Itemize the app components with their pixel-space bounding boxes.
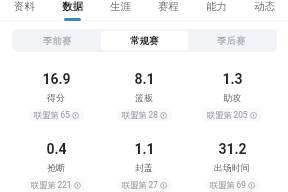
staticText: 出场时间 [214,162,250,173]
staticText: 0.4 [46,141,67,157]
staticText: 能力 [206,0,227,13]
staticText: 资料 [14,0,35,13]
button[interactable]: 季前赛 [14,31,101,50]
staticText: 联盟第 69 [210,180,246,190]
button[interactable]: 0.4 [12,141,100,192]
button[interactable]: 数据 [48,0,96,22]
staticText: 生涯 [110,0,131,13]
staticText: 数据 [62,0,83,13]
button[interactable]: 8.1 [100,71,188,122]
staticText: 联盟第 65 [34,110,70,120]
button[interactable]: 生涯 [96,0,144,22]
button[interactable]: 动态 [240,0,288,22]
button[interactable]: 能力 [192,0,240,22]
staticText: 联盟第 205 [207,110,248,120]
button[interactable]: 赛程 [144,0,192,22]
staticText: 1.1 [134,141,155,157]
other: Info [160,112,167,119]
button[interactable]: 资料 [0,0,48,22]
staticText: 联盟第 221 [31,180,72,190]
staticText: 抢断 [47,162,65,173]
staticText: 31.2 [218,141,247,157]
other: Info [74,182,81,189]
button[interactable]: 常规赛 [101,31,188,50]
staticText: 动态 [254,0,275,13]
other: Info [248,182,255,189]
button[interactable]: 1.1 [100,141,188,192]
staticText: 季后赛 [217,35,246,47]
button[interactable]: 31.2 [188,141,276,192]
staticText: 封盖 [135,162,153,173]
staticText: 助攻 [223,92,241,103]
staticText: 8.1 [134,71,155,87]
other: Info [250,112,257,119]
staticText: 得分 [47,92,65,103]
staticText: 常规赛 [130,35,159,47]
staticText: 联盟第 27 [122,180,158,190]
other: Info [160,182,167,189]
staticText: 赛程 [158,0,179,13]
staticText: 1.3 [222,71,243,87]
staticText: 季前赛 [43,35,72,47]
staticText: 联盟第 28 [122,110,158,120]
button[interactable]: 季后赛 [188,31,275,50]
staticText: 16.9 [42,71,71,87]
button[interactable]: 1.3 [188,71,276,122]
button[interactable]: 16.9 [12,71,100,122]
other: Info [72,112,79,119]
staticText: 篮板 [135,92,153,103]
